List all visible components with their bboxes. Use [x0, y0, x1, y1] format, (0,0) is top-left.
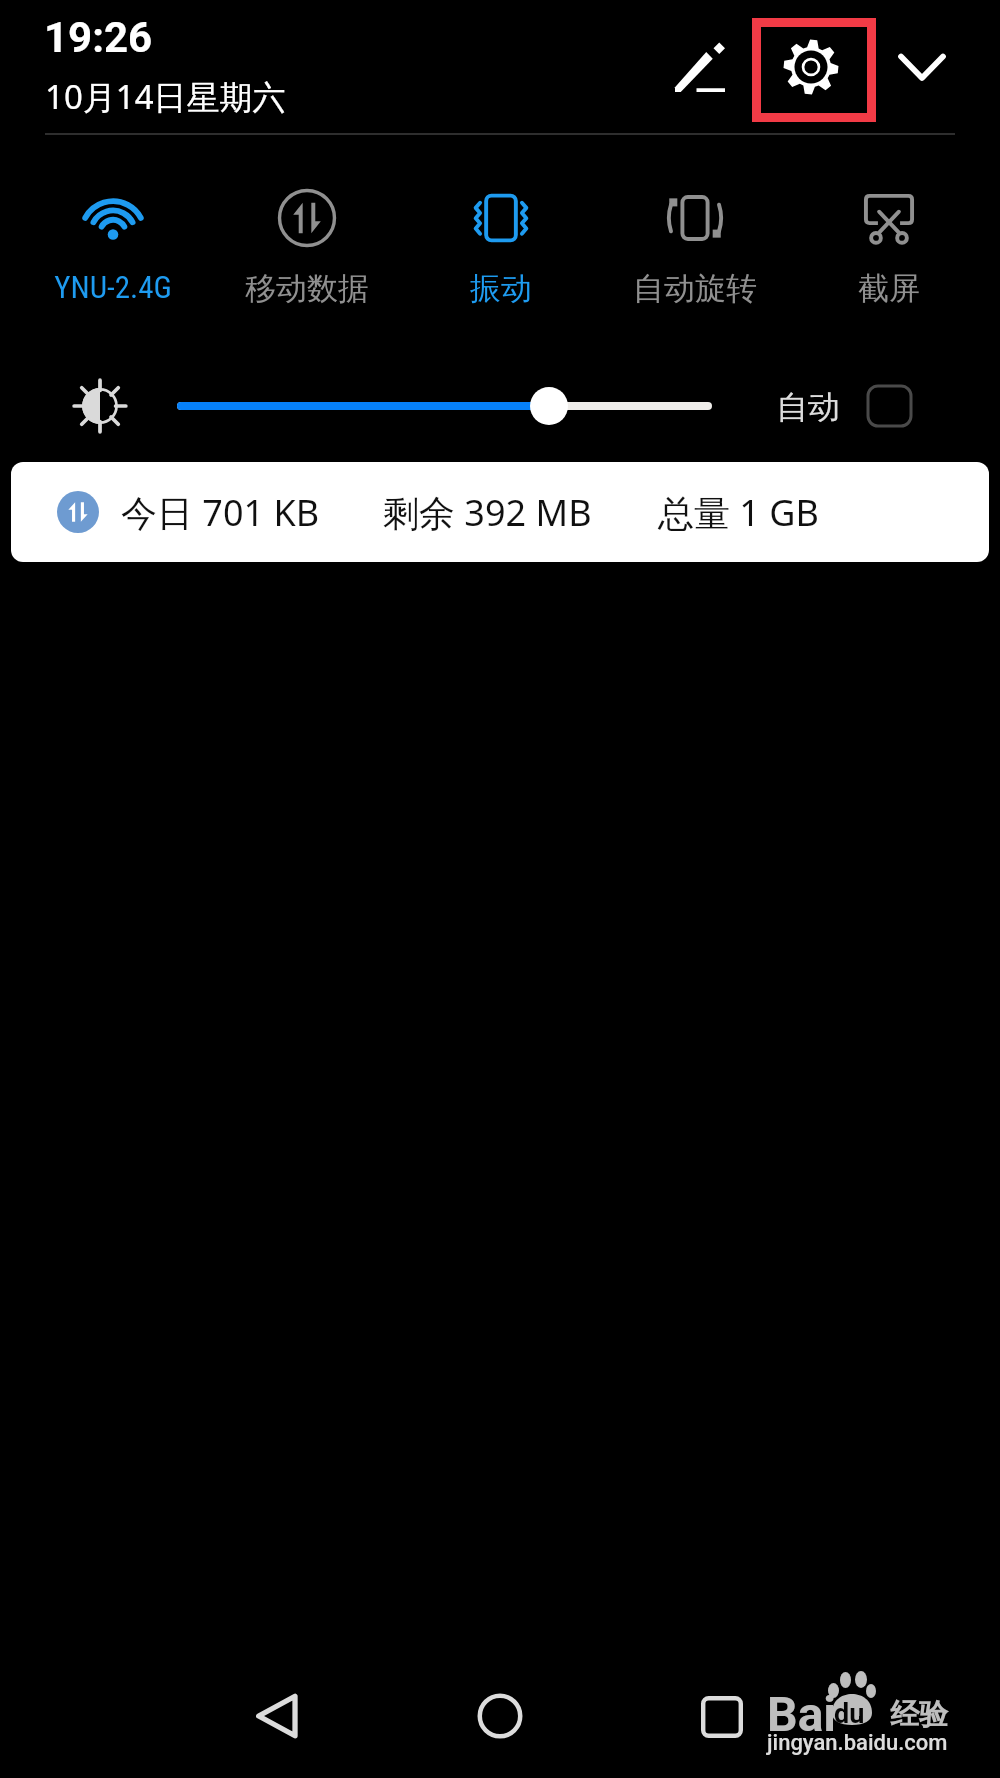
button[interactable]: 截屏 — [792, 188, 986, 308]
staticText: 19:26 — [44, 13, 153, 62]
staticText: 总量 1 GB — [658, 488, 819, 537]
staticText: 剩余 392 MB — [383, 488, 592, 537]
button[interactable]: Brightness — [160, 381, 725, 431]
button[interactable]: 振动 — [404, 188, 598, 308]
button[interactable]: Auto brightness — [868, 386, 911, 426]
button[interactable]: Settings — [752, 18, 876, 122]
staticText: 10月14日星期六 — [45, 74, 286, 119]
staticText: jingyan.baidu.com — [767, 1730, 948, 1756]
button[interactable]: 自动旋转 — [598, 188, 792, 308]
button[interactable]: Home — [460, 1676, 540, 1756]
staticText: 今日 701 KB — [121, 488, 320, 537]
button[interactable]: Edit — [660, 27, 740, 107]
staticText: 截屏 — [858, 269, 920, 308]
button[interactable]: Brightness level — [65, 371, 135, 441]
button[interactable]: 移动数据 — [210, 188, 404, 308]
staticText: 移动数据 — [245, 269, 369, 308]
staticText: du — [834, 1698, 865, 1730]
button[interactable]: YNU-2.4G — [16, 188, 210, 305]
staticText: 自动 — [776, 387, 840, 427]
staticText: Bai — [767, 1686, 837, 1742]
button[interactable]: Expand — [882, 24, 962, 104]
staticText: 经验 — [890, 1696, 948, 1733]
staticText: 振动 — [470, 269, 532, 308]
staticText: 自动旋转 — [633, 269, 757, 308]
button[interactable]: Recents — [681, 1676, 763, 1758]
button[interactable]: 今日 701 KB — [11, 462, 989, 562]
staticText: YNU-2.4G — [54, 269, 172, 305]
button[interactable]: Back — [238, 1676, 318, 1756]
